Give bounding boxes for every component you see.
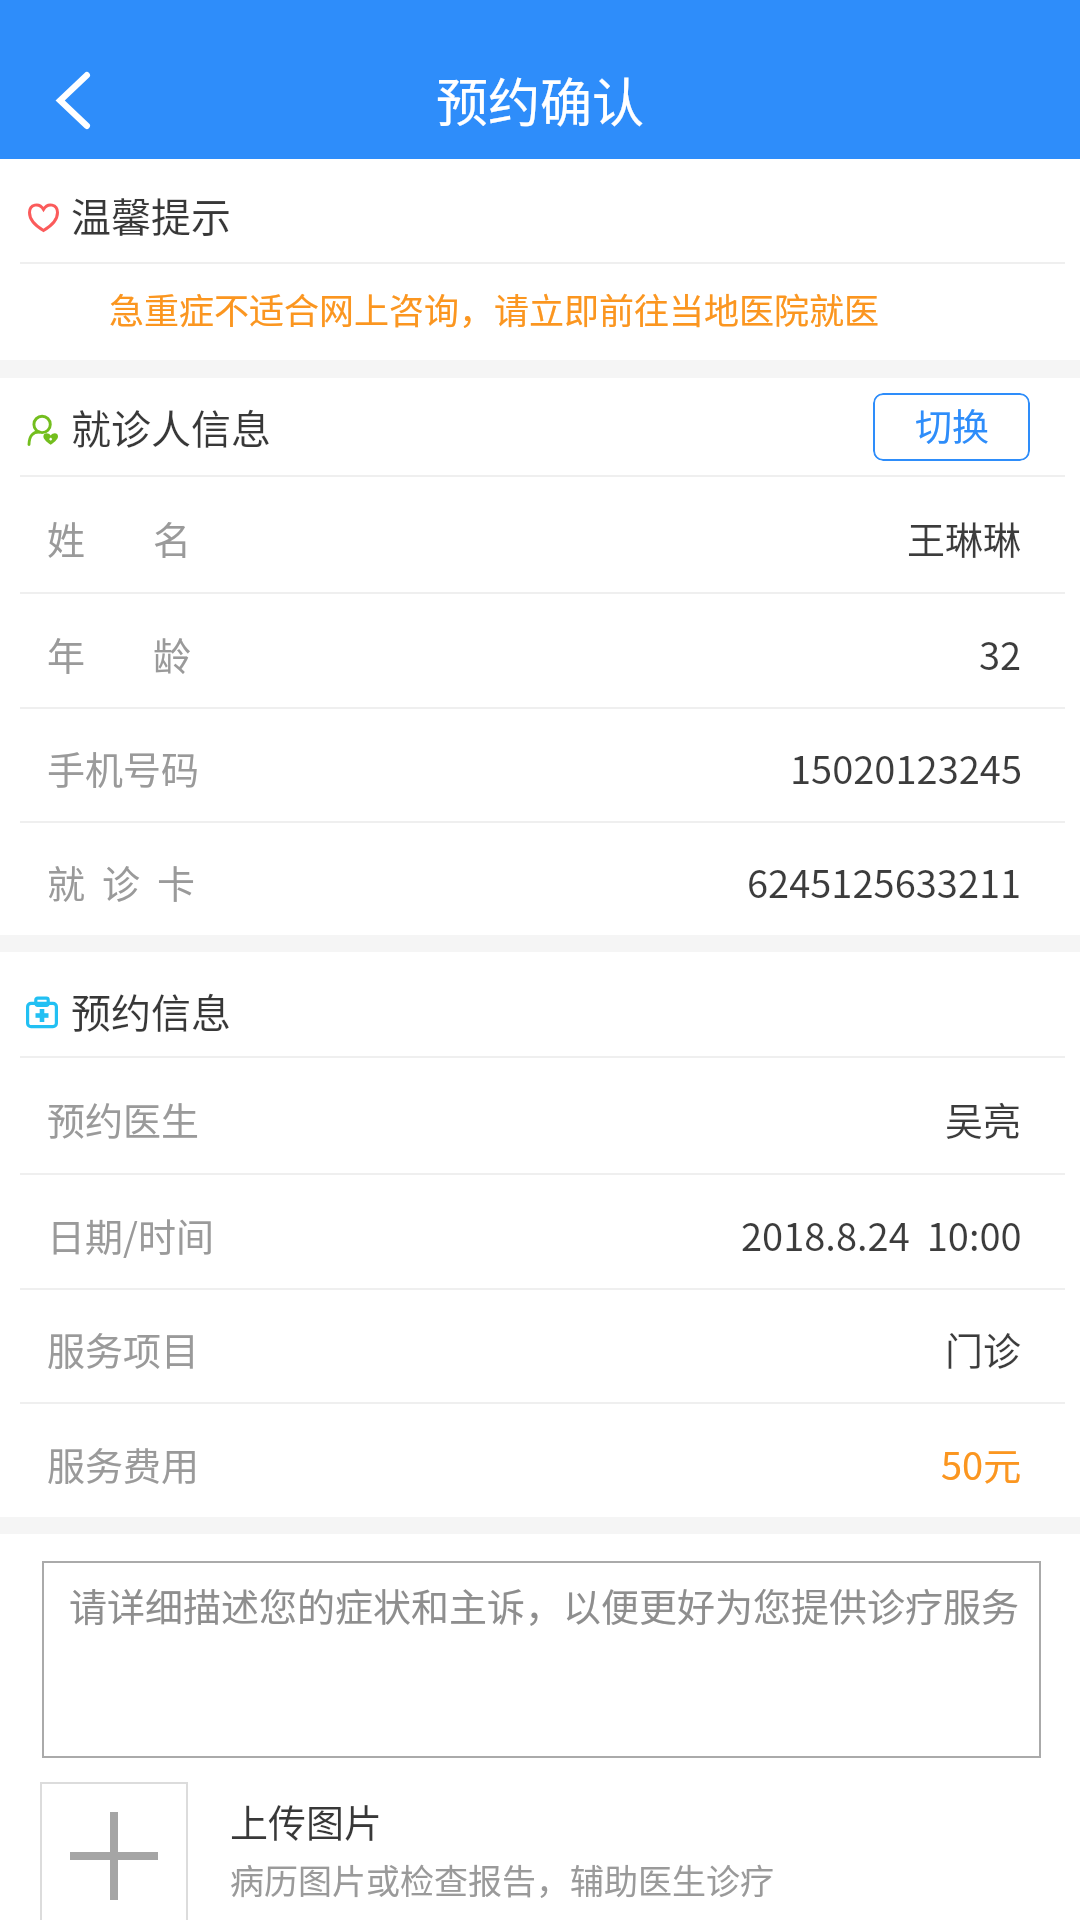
staticText: 吴亮 xyxy=(945,1091,1022,1146)
staticText: 病历图片或检查报告，辅助医生诊疗 xyxy=(230,1855,774,1904)
staticText: 手机号码 xyxy=(47,740,200,795)
staticText: 上传图片 xyxy=(230,1793,383,1848)
staticText: 预约确认 xyxy=(436,62,645,137)
staticText: 日期/时间 xyxy=(47,1207,214,1262)
staticText: 预约医生 xyxy=(47,1091,200,1146)
button[interactable]: Back xyxy=(33,60,113,140)
button[interactable]: 日期/时间 xyxy=(0,1175,1080,1288)
button[interactable]: 切换 xyxy=(873,393,1030,461)
staticText: 15020123245 xyxy=(790,740,1022,795)
staticText: 切换 xyxy=(915,398,989,452)
button[interactable]: 手机号码 xyxy=(0,709,1080,821)
button[interactable]: 就 诊 卡 xyxy=(0,823,1080,935)
staticText: 预约信息 xyxy=(71,982,231,1040)
button[interactable]: Upload image xyxy=(40,1782,188,1920)
button[interactable]: 预约医生 xyxy=(0,1058,1080,1173)
button[interactable]: 姓 名 xyxy=(0,477,1080,592)
staticText: 年 龄 xyxy=(47,626,192,681)
staticText: 32 xyxy=(979,626,1022,681)
button[interactable]: Upload image xyxy=(0,1758,1080,1920)
staticText: 服务项目 xyxy=(47,1321,200,1376)
staticText: 门诊 xyxy=(945,1321,1022,1376)
staticText: 姓 名 xyxy=(47,510,192,565)
button[interactable]: 服务项目 xyxy=(0,1290,1080,1402)
button[interactable]: 年 龄 xyxy=(0,594,1080,707)
button[interactable]: 请详细描述您的症状和主诉，以便更好为您提供诊疗服务 xyxy=(42,1561,1041,1758)
staticText: 50元 xyxy=(941,1436,1022,1491)
button[interactable]: 服务费用 xyxy=(0,1404,1080,1517)
staticText: 服务费用 xyxy=(47,1436,200,1491)
staticText: 就 诊 卡 xyxy=(47,854,196,909)
staticText: 王琳琳 xyxy=(907,510,1022,565)
staticText: 2018.8.24 10:00 xyxy=(741,1207,1022,1262)
staticText: 温馨提示 xyxy=(71,186,231,244)
staticText: 就诊人信息 xyxy=(71,398,271,456)
staticText: 请详细描述您的症状和主诉，以便更好为您提供诊疗服务 xyxy=(69,1577,1020,1632)
staticText: 6245125633211 xyxy=(747,854,1022,909)
staticText: 急重症不适合网上咨询，请立即前往当地医院就医 xyxy=(109,283,880,334)
